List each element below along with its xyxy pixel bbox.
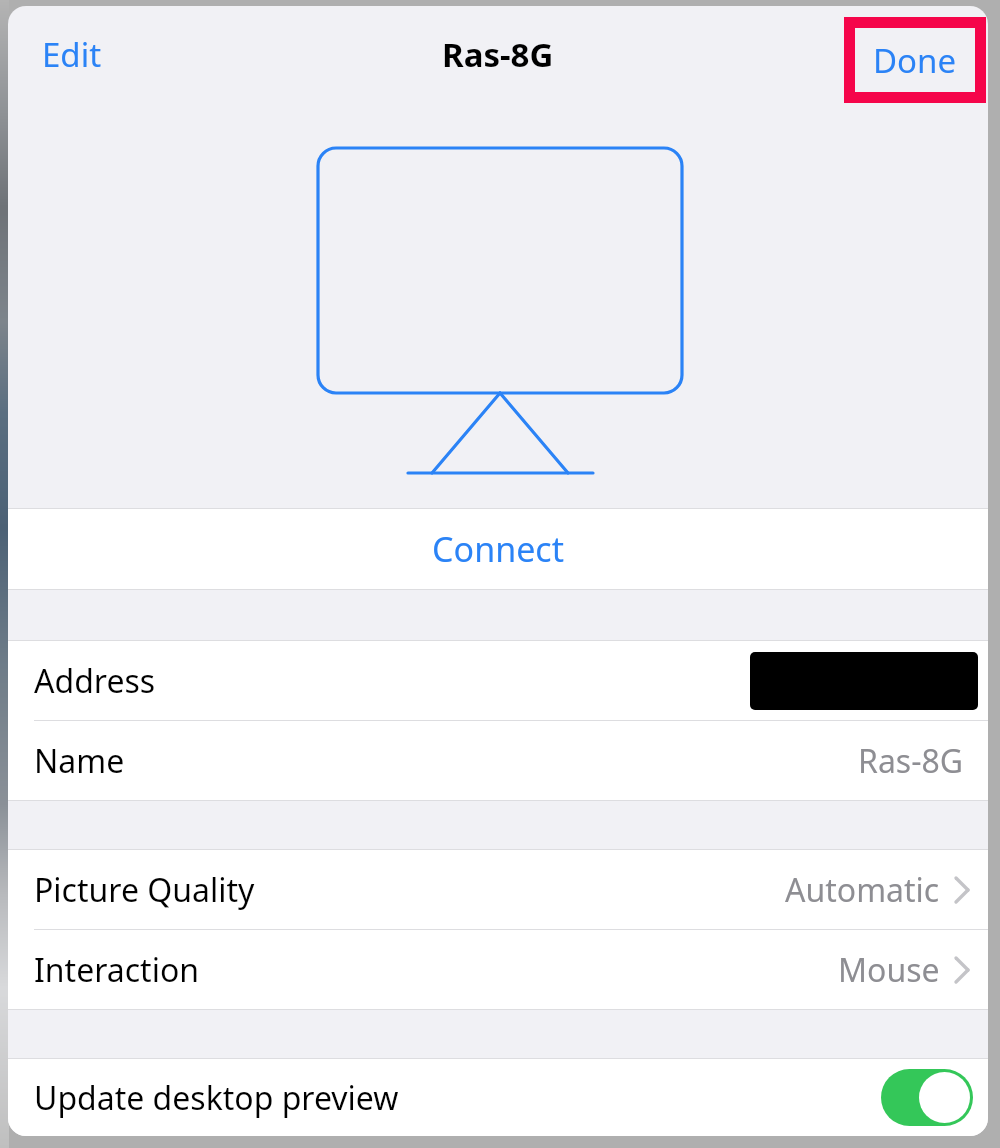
staticText: Name: [34, 739, 125, 783]
button[interactable]: Interaction: [8, 930, 988, 1009]
button[interactable]: Done: [855, 28, 975, 92]
staticText: Done: [873, 38, 957, 83]
button[interactable]: Address: [8, 641, 988, 720]
button[interactable]: Update desktop preview toggle, on: [881, 1069, 973, 1126]
staticText: Ras-8G: [858, 739, 964, 783]
button[interactable]: Update desktop preview: [8, 1059, 988, 1136]
staticText: Interaction: [34, 948, 200, 992]
button[interactable]: Connect: [8, 509, 988, 589]
button[interactable]: Name: [8, 721, 988, 800]
staticText: Edit: [42, 32, 102, 77]
staticText: Ras-8G: [442, 32, 554, 77]
staticText: Mouse: [838, 948, 940, 992]
staticText: Connect: [432, 526, 564, 572]
staticText: Automatic: [785, 868, 940, 912]
button[interactable]: Edit: [34, 22, 110, 87]
button[interactable]: Picture Quality: [8, 850, 988, 929]
staticText: Picture Quality: [34, 868, 255, 912]
staticText: Update desktop preview: [34, 1076, 399, 1120]
staticText: Address: [34, 659, 156, 703]
